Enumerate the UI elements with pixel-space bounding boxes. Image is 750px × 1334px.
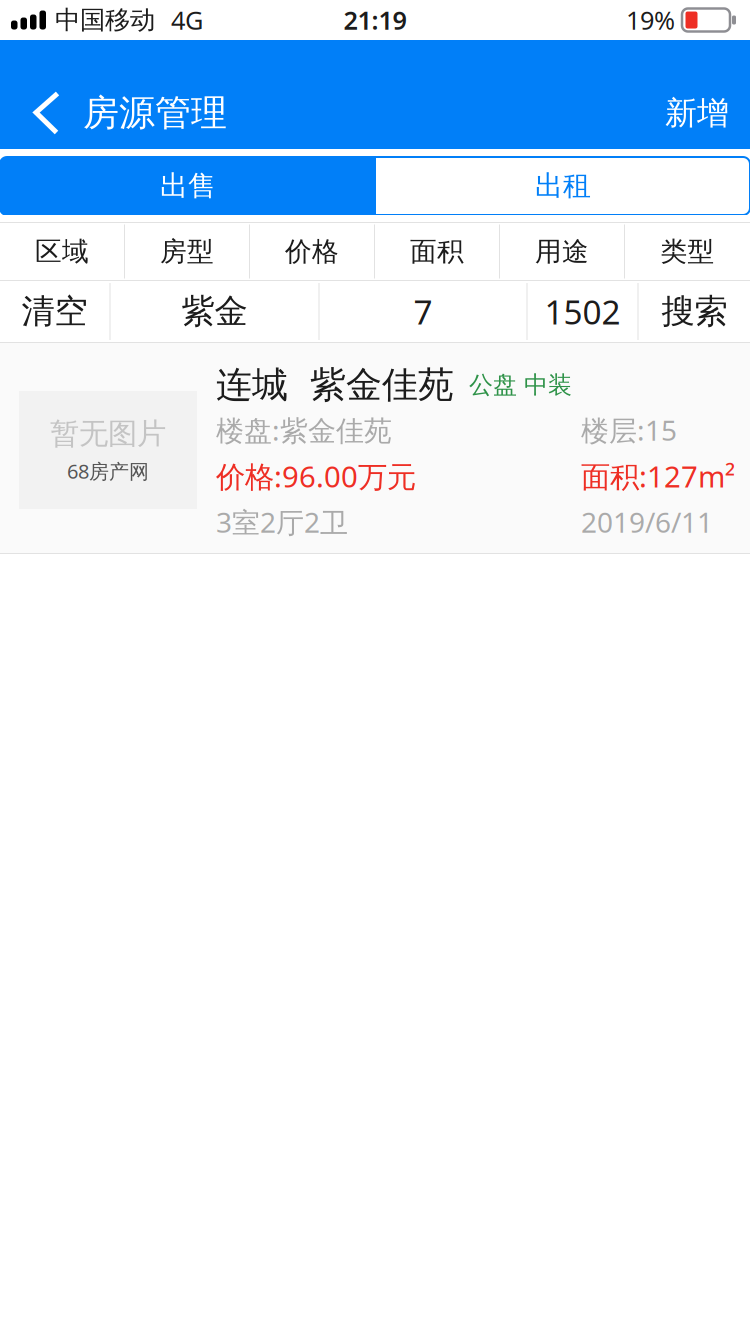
button[interactable]: 7: [319, 281, 526, 342]
button[interactable]: 新增: [641, 77, 750, 149]
staticText: 区域: [35, 235, 89, 268]
button[interactable]: 搜索: [638, 281, 750, 342]
button[interactable]: 1502: [527, 281, 637, 342]
staticText: 面积: [410, 235, 464, 268]
staticText: 中国移动: [55, 4, 155, 35]
staticText: 3室2厅2卫: [216, 503, 348, 541]
staticText: 19%: [626, 3, 675, 37]
staticText: 连城 紫金佳苑: [216, 363, 454, 407]
staticText: 4G: [171, 3, 203, 37]
staticText: 楼盘:紫金佳苑: [216, 411, 392, 449]
staticText: 价格: [285, 235, 339, 268]
staticText: 类型: [660, 235, 714, 268]
staticText: 新增: [665, 93, 729, 133]
staticText: 出租: [535, 169, 591, 203]
staticText: 清空: [21, 291, 87, 332]
staticText: 2019/6/11: [581, 503, 713, 541]
button[interactable]: 用途: [500, 223, 624, 280]
staticText: 公盘 中装: [469, 370, 572, 400]
staticText: 楼层:15: [581, 411, 677, 449]
button[interactable]: 返回 房源管理: [0, 77, 243, 149]
button[interactable]: 清空: [0, 281, 109, 342]
button[interactable]: 区域: [0, 223, 124, 280]
button[interactable]: 出售: [0, 157, 376, 215]
staticText: 出售: [160, 169, 216, 203]
staticText: 面积:127m²: [581, 456, 735, 495]
button[interactable]: 出租: [376, 157, 750, 215]
staticText: 68房产网: [67, 458, 149, 484]
staticText: 7: [413, 289, 432, 334]
staticText: 搜索: [661, 291, 727, 332]
staticText: 房源管理: [83, 91, 227, 135]
button[interactable]: 房型: [125, 223, 249, 280]
button[interactable]: 面积: [375, 223, 499, 280]
staticText: 用途: [535, 235, 589, 268]
staticText: 暂无图片: [50, 416, 166, 452]
staticText: 21:19: [343, 3, 406, 37]
button[interactable]: 价格: [250, 223, 374, 280]
staticText: 价格:96.00万元: [216, 456, 416, 495]
button[interactable]: 紫金: [110, 281, 318, 342]
staticText: 1502: [544, 289, 620, 334]
staticText: 房型: [160, 235, 214, 268]
button[interactable]: 类型: [625, 223, 750, 280]
button[interactable]: 暂无图片: [0, 343, 750, 553]
staticText: 紫金: [181, 291, 247, 332]
